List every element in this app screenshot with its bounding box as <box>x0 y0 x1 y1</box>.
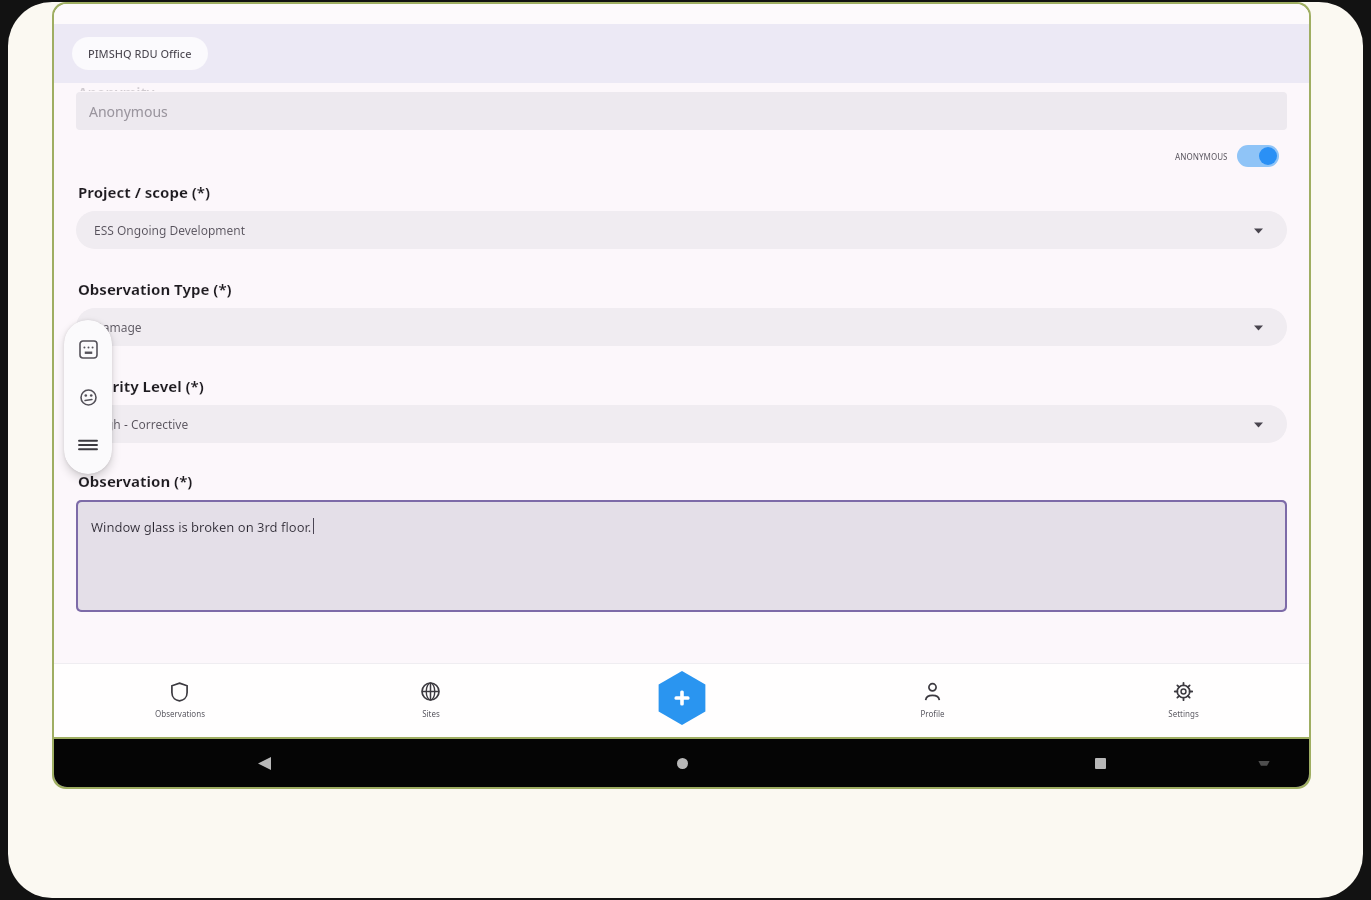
button[interactable]: More options <box>73 430 103 460</box>
button[interactable]: Profile <box>807 663 1058 737</box>
staticText: Observation Type (*) <box>78 279 232 299</box>
staticText: PIMSHQ RDU Office <box>88 46 192 61</box>
button[interactable]: Home <box>665 746 699 780</box>
button[interactable]: Observations <box>54 663 305 737</box>
button[interactable]: Emoji <box>73 382 103 412</box>
button[interactable]: Anonymous <box>76 92 1287 130</box>
staticText: High - Corrective <box>94 416 189 432</box>
button[interactable]: Hide keyboard <box>1253 752 1275 774</box>
button[interactable]: Window glass is broken on 3rd floor. <box>78 502 1285 610</box>
button[interactable]: ESS Ongoing Development <box>76 211 1287 249</box>
staticText: Observations <box>155 708 205 719</box>
button[interactable]: Damage <box>76 308 1287 346</box>
staticText: Anonymous <box>89 102 168 121</box>
staticText: Observation (*) <box>78 471 193 491</box>
button[interactable]: Sites <box>305 663 556 737</box>
button[interactable]: Settings <box>1058 663 1309 737</box>
staticText: ESS Ongoing Development <box>94 222 246 238</box>
staticText: Anonymity <box>78 83 155 91</box>
staticText: Severity Level (*) <box>78 376 204 396</box>
staticText: Project / scope (*) <box>78 182 211 202</box>
staticText: ANONYMOUS <box>1175 151 1228 162</box>
button[interactable]: Recents <box>1083 746 1117 780</box>
staticText: Settings <box>1168 708 1199 719</box>
staticText: Window glass is broken on 3rd floor. <box>91 518 312 536</box>
button[interactable]: Keyboard <box>73 334 103 364</box>
button[interactable]: ANONYMOUS <box>1169 139 1285 173</box>
button[interactable]: Back <box>247 746 281 780</box>
button[interactable]: Add observation <box>655 671 709 725</box>
button[interactable]: High - Corrective <box>76 405 1287 443</box>
staticText: Damage <box>94 319 142 335</box>
button[interactable]: PIMSHQ RDU Office <box>72 37 208 70</box>
staticText: Profile <box>920 708 945 719</box>
staticText: Sites <box>422 708 440 719</box>
